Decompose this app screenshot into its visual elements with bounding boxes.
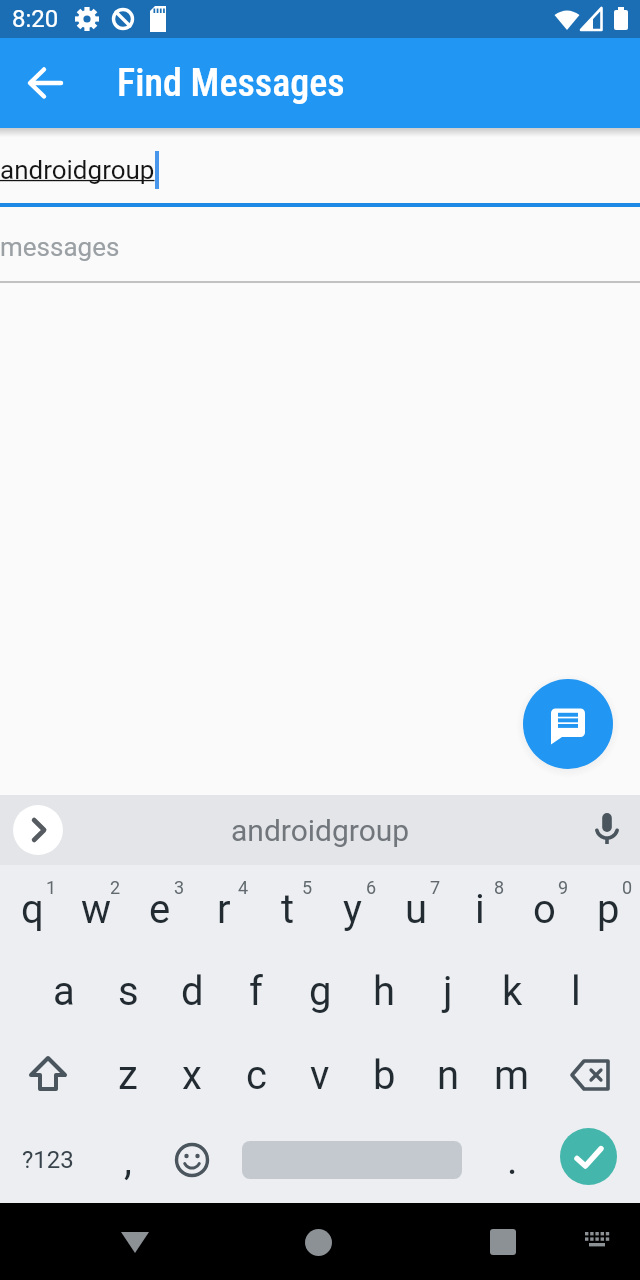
staticText: 6 (366, 877, 377, 898)
staticText: w (81, 886, 112, 933)
staticText: 1 (46, 877, 57, 898)
staticText: g (309, 968, 332, 1015)
button[interactable]: z (96, 1033, 160, 1117)
button[interactable]: . (480, 1117, 544, 1203)
button[interactable]: n (416, 1033, 480, 1117)
button[interactable]: d (160, 949, 224, 1033)
button[interactable]: r (192, 865, 256, 949)
button[interactable] (544, 1033, 640, 1117)
button[interactable]: g (288, 949, 352, 1033)
button[interactable] (475, 1214, 531, 1270)
button[interactable]: q (0, 865, 64, 949)
staticText: i (475, 886, 485, 933)
button[interactable]: w (64, 865, 128, 949)
staticText: a (53, 968, 75, 1015)
button[interactable]: t (256, 865, 320, 949)
button[interactable] (544, 1117, 640, 1203)
staticText: messages (0, 232, 120, 262)
staticText: Find Messages (117, 61, 345, 106)
staticText: n (437, 1052, 460, 1099)
button[interactable] (224, 1117, 480, 1203)
staticText: . (507, 1137, 518, 1184)
button[interactable]: a (32, 949, 96, 1033)
staticText: 0 (622, 877, 633, 898)
staticText: v (310, 1052, 330, 1099)
staticText: k (502, 968, 523, 1015)
staticText: androidgroup (231, 813, 410, 848)
button[interactable]: c (224, 1033, 288, 1117)
staticText: 5 (302, 877, 313, 898)
button[interactable]: l (544, 949, 608, 1033)
staticText: 8 (494, 877, 505, 898)
staticText: m (494, 1052, 530, 1099)
button[interactable] (290, 1214, 346, 1270)
staticText: f (249, 968, 263, 1015)
staticText: z (118, 1052, 138, 1099)
staticText: e (149, 886, 171, 933)
button[interactable] (0, 1033, 96, 1117)
staticText: h (373, 968, 396, 1015)
staticText: j (443, 968, 453, 1015)
staticText: ?123 (22, 1146, 74, 1174)
staticText: 4 (238, 877, 249, 898)
staticText: o (533, 886, 556, 933)
staticText: d (181, 968, 204, 1015)
staticText: androidgroup (0, 155, 155, 185)
button[interactable] (587, 810, 627, 850)
button[interactable]: x (160, 1033, 224, 1117)
staticText: c (246, 1052, 267, 1099)
button[interactable]: s (96, 949, 160, 1033)
button[interactable] (107, 1214, 163, 1270)
button[interactable] (523, 679, 613, 769)
button[interactable]: y (320, 865, 384, 949)
staticText: q (21, 886, 44, 933)
staticText: r (217, 886, 231, 933)
button[interactable]: b (352, 1033, 416, 1117)
button[interactable]: p (576, 865, 640, 949)
staticText: 2 (110, 877, 121, 898)
button[interactable]: m (480, 1033, 544, 1117)
staticText: 7 (430, 877, 441, 898)
staticText: t (281, 886, 295, 933)
button[interactable]: u (384, 865, 448, 949)
staticText: s (118, 968, 139, 1015)
button[interactable] (13, 805, 63, 855)
button[interactable]: androidgroup (0, 128, 640, 207)
button[interactable]: j (416, 949, 480, 1033)
button[interactable] (14, 52, 76, 114)
staticText: b (373, 1052, 396, 1099)
button[interactable]: o (512, 865, 576, 949)
staticText: 9 (558, 877, 569, 898)
button[interactable]: i (448, 865, 512, 949)
button[interactable]: e (128, 865, 192, 949)
staticText: p (597, 886, 620, 933)
button[interactable]: k (480, 949, 544, 1033)
button[interactable]: ?123 (0, 1117, 96, 1203)
staticText: 8:20 (12, 5, 59, 33)
button[interactable]: f (224, 949, 288, 1033)
staticText: u (405, 886, 428, 933)
button[interactable]: messages (0, 207, 640, 283)
staticText: l (571, 968, 581, 1015)
staticText: , (124, 1137, 132, 1184)
staticText: x (182, 1052, 202, 1099)
button[interactable]: h (352, 949, 416, 1033)
button[interactable]: , (96, 1117, 160, 1203)
button[interactable] (160, 1117, 224, 1203)
staticText: y (343, 886, 362, 933)
button[interactable]: v (288, 1033, 352, 1117)
button[interactable]: androidgroup (0, 795, 640, 865)
staticText: 3 (174, 877, 185, 898)
button[interactable] (578, 1223, 616, 1261)
